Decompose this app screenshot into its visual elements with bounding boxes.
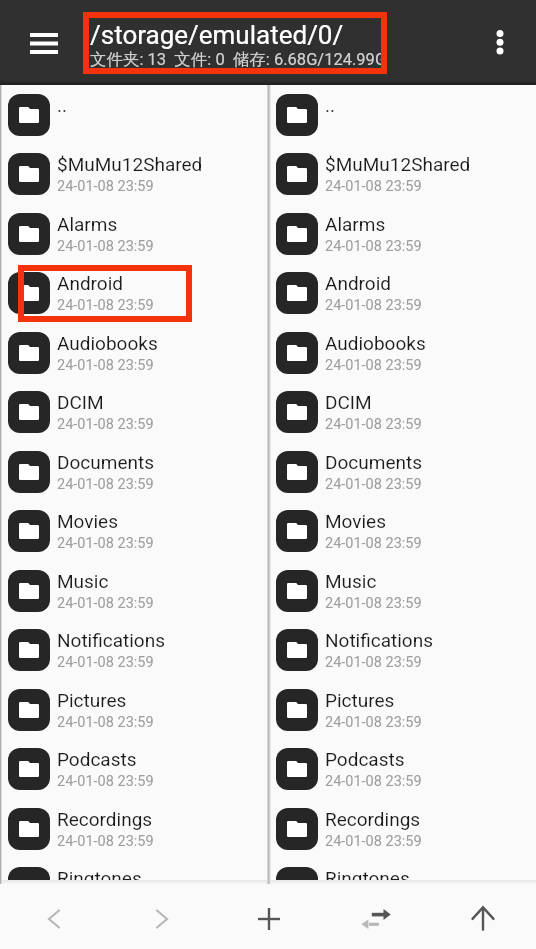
- staticText: 24-01-08 23:59: [57, 714, 154, 731]
- staticText: 24-01-08 23:59: [57, 535, 154, 552]
- button[interactable]: Documents: [268, 442, 536, 501]
- staticText: Podcasts: [325, 748, 405, 770]
- staticText: Music: [57, 570, 109, 592]
- button[interactable]: Notifications: [268, 620, 536, 679]
- button[interactable]: Movies: [0, 501, 268, 560]
- button[interactable]: Music: [0, 561, 268, 620]
- button[interactable]: Podcasts: [0, 739, 268, 798]
- button[interactable]: Movies: [268, 501, 536, 560]
- button[interactable]: Forward: [108, 884, 215, 949]
- staticText: 24-01-08 23:59: [325, 833, 422, 850]
- staticText: 24-01-08 23:59: [57, 297, 154, 314]
- staticText: 文件夹: 13 文件: 0 储存: 6.68G/124.99G: [90, 49, 387, 70]
- button[interactable]: ..: [268, 85, 536, 144]
- button[interactable]: Transfer: [322, 884, 429, 949]
- button[interactable]: DCIM: [268, 382, 536, 441]
- staticText: 24-01-08 23:59: [325, 178, 422, 195]
- staticText: Movies: [57, 510, 118, 532]
- staticText: Notifications: [57, 629, 166, 651]
- staticText: Music: [325, 570, 377, 592]
- button[interactable]: Up one level: [429, 884, 536, 949]
- staticText: 24-01-08 23:59: [57, 357, 154, 374]
- staticText: Ringtones: [57, 867, 142, 884]
- staticText: 24-01-08 23:59: [57, 654, 154, 671]
- button[interactable]: Recordings: [268, 799, 536, 858]
- button[interactable]: Ringtones: [268, 858, 536, 884]
- staticText: ..: [325, 94, 336, 116]
- button[interactable]: Open navigation menu: [16, 15, 72, 71]
- staticText: 24-01-08 23:59: [325, 773, 422, 790]
- button[interactable]: Recordings: [0, 799, 268, 858]
- staticText: 24-01-08 23:59: [325, 357, 422, 374]
- staticText: Pictures: [325, 689, 395, 711]
- staticText: 24-01-08 23:59: [325, 654, 422, 671]
- staticText: 24-01-08 23:59: [325, 535, 422, 552]
- staticText: Podcasts: [57, 748, 137, 770]
- staticText: Pictures: [57, 689, 127, 711]
- button[interactable]: Ringtones: [0, 858, 268, 884]
- staticText: Documents: [325, 451, 422, 473]
- staticText: 24-01-08 23:59: [57, 476, 154, 493]
- button[interactable]: Notifications: [0, 620, 268, 679]
- staticText: Documents: [57, 451, 154, 473]
- staticText: Recordings: [57, 808, 153, 830]
- button[interactable]: Audiobooks: [268, 323, 536, 382]
- button[interactable]: More options: [472, 15, 528, 71]
- button[interactable]: ..: [0, 85, 268, 144]
- staticText: Ringtones: [325, 867, 410, 884]
- button[interactable]: Alarms: [0, 204, 268, 263]
- button[interactable]: Music: [268, 561, 536, 620]
- button[interactable]: Android: [268, 263, 536, 322]
- staticText: 24-01-08 23:59: [57, 416, 154, 433]
- button[interactable]: Pictures: [0, 680, 268, 739]
- staticText: Android: [57, 272, 124, 294]
- staticText: 24-01-08 23:59: [325, 595, 422, 612]
- staticText: $MuMu12Shared: [57, 153, 203, 175]
- button[interactable]: Alarms: [268, 204, 536, 263]
- staticText: 24-01-08 23:59: [57, 238, 154, 255]
- staticText: 24-01-08 23:59: [325, 416, 422, 433]
- staticText: 24-01-08 23:59: [325, 297, 422, 314]
- staticText: Notifications: [325, 629, 434, 651]
- button[interactable]: Back: [0, 884, 108, 949]
- button[interactable]: Podcasts: [268, 739, 536, 798]
- staticText: DCIM: [325, 391, 372, 413]
- button[interactable]: New folder: [215, 884, 322, 949]
- button[interactable]: Audiobooks: [0, 323, 268, 382]
- staticText: Alarms: [57, 213, 118, 235]
- button[interactable]: Documents: [0, 442, 268, 501]
- staticText: Android: [325, 272, 392, 294]
- staticText: $MuMu12Shared: [325, 153, 471, 175]
- button[interactable]: $MuMu12Shared: [0, 144, 268, 203]
- staticText: 24-01-08 23:59: [325, 476, 422, 493]
- button[interactable]: DCIM: [0, 382, 268, 441]
- staticText: DCIM: [57, 391, 104, 413]
- staticText: 24-01-08 23:59: [325, 238, 422, 255]
- button[interactable]: $MuMu12Shared: [268, 144, 536, 203]
- staticText: 24-01-08 23:59: [57, 773, 154, 790]
- button[interactable]: Android: [0, 263, 268, 322]
- staticText: Audiobooks: [57, 332, 158, 354]
- staticText: 24-01-08 23:59: [57, 595, 154, 612]
- staticText: 24-01-08 23:59: [325, 714, 422, 731]
- button[interactable]: Pictures: [268, 680, 536, 739]
- staticText: 24-01-08 23:59: [57, 178, 154, 195]
- staticText: Recordings: [325, 808, 421, 830]
- staticText: ..: [57, 94, 68, 116]
- staticText: Movies: [325, 510, 386, 532]
- staticText: Audiobooks: [325, 332, 426, 354]
- staticText: 24-01-08 23:59: [57, 833, 154, 850]
- staticText: /storage/emulated/0/: [90, 20, 344, 50]
- staticText: Alarms: [325, 213, 386, 235]
